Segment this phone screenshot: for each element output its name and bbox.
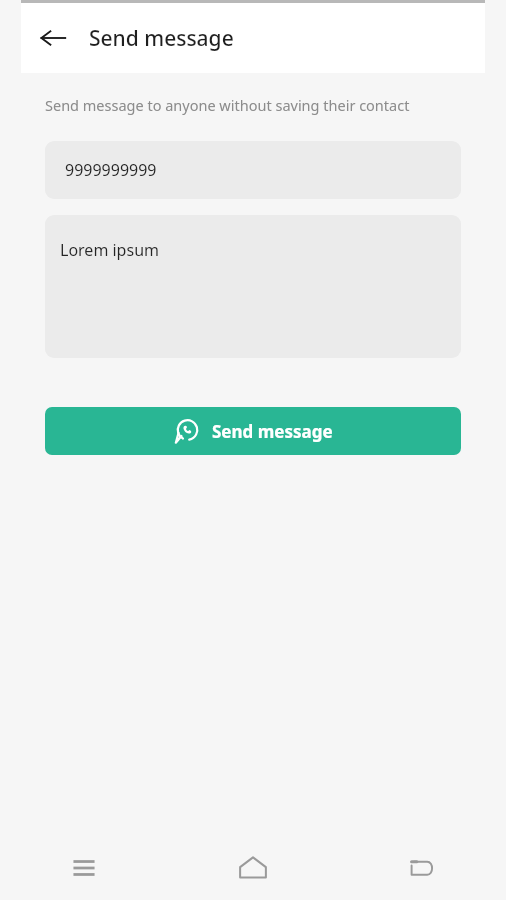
staticText: Lorem ipsum (60, 239, 159, 261)
staticText: Send message (212, 420, 333, 443)
button[interactable]: Send message (45, 407, 461, 455)
button[interactable]: Back (337, 836, 506, 900)
staticText: Send message (89, 24, 234, 53)
staticText: 9999999999 (65, 159, 157, 181)
staticText: Send message to anyone without saving th… (45, 95, 426, 115)
button[interactable]: Lorem ipsum (45, 215, 461, 358)
button[interactable]: Recent apps (0, 836, 168, 900)
button[interactable]: Home (168, 836, 337, 900)
button[interactable]: 9999999999 (45, 141, 461, 199)
button[interactable]: Back (29, 14, 77, 62)
